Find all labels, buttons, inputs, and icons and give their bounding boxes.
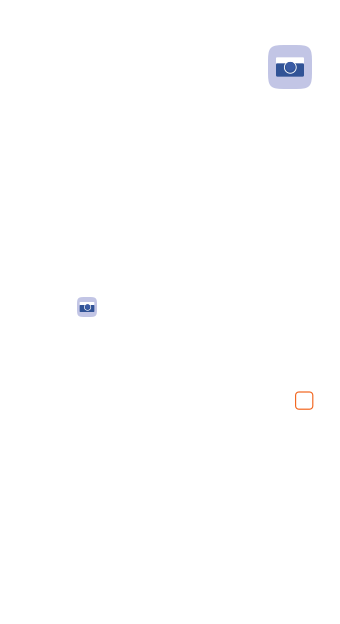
button[interactable]: Camera (268, 45, 312, 89)
button[interactable]: Camera (77, 297, 97, 317)
button[interactable]: Select (296, 392, 313, 409)
